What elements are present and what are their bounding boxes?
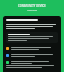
staticText: UPDATES bbox=[4, 9, 60, 12]
staticText: COMMUNITY DEVICE bbox=[4, 4, 60, 8]
button[interactable] bbox=[6, 32, 58, 43]
